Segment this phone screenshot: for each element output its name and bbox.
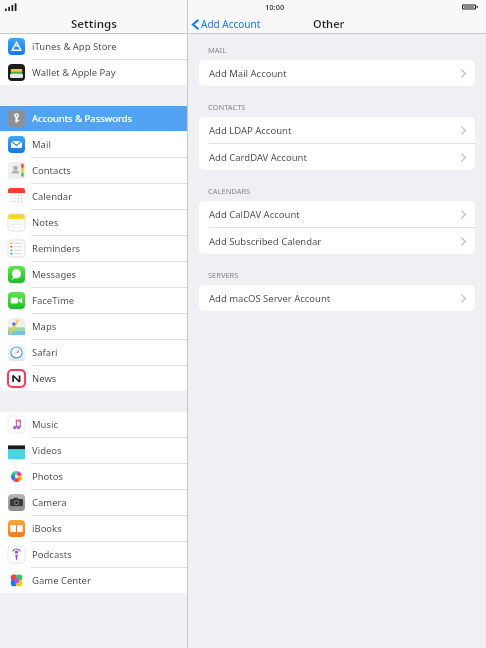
button[interactable]: FaceTime: [0, 288, 187, 313]
button[interactable]: Mail: [0, 132, 187, 157]
staticText: iTunes & App Store: [32, 40, 117, 53]
button[interactable]: Game Center: [0, 568, 187, 593]
button[interactable]: iBooks: [0, 516, 187, 541]
button[interactable]: Add CardDAV Account: [199, 144, 475, 170]
button[interactable]: News: [0, 366, 187, 391]
staticText: Photos: [32, 470, 64, 483]
staticText: FaceTime: [32, 294, 75, 307]
staticText: CONTACTS: [208, 102, 246, 112]
staticText: Settings: [71, 16, 117, 32]
staticText: Add Mail Account: [209, 67, 461, 80]
staticText: Mail: [32, 138, 51, 151]
button[interactable]: Reminders: [0, 236, 187, 261]
button[interactable]: Add Subscribed Calendar: [199, 228, 475, 254]
staticText: Add LDAP Account: [209, 124, 461, 137]
staticText: News: [32, 372, 57, 385]
button[interactable]: Music: [0, 412, 187, 437]
staticText: Music: [32, 418, 59, 431]
button[interactable]: Notes: [0, 210, 187, 235]
staticText: Add Account: [201, 17, 261, 31]
staticText: Wallet & Apple Pay: [32, 66, 116, 79]
button[interactable]: Safari: [0, 340, 187, 365]
staticText: Accounts & Passwords: [32, 112, 133, 125]
staticText: 10:00: [265, 2, 285, 12]
button[interactable]: Camera: [0, 490, 187, 515]
button[interactable]: Calendar: [0, 184, 187, 209]
button[interactable]: iTunes & App Store: [0, 34, 187, 59]
staticText: SERVERS: [208, 270, 239, 280]
staticText: Add CardDAV Account: [209, 151, 461, 164]
button[interactable]: Wallet & Apple Pay: [0, 60, 187, 85]
staticText: Safari: [32, 346, 58, 359]
staticText: Add CalDAV Account: [209, 208, 461, 221]
staticText: Game Center: [32, 574, 91, 587]
button[interactable]: Maps: [0, 314, 187, 339]
button[interactable]: Podcasts: [0, 542, 187, 567]
staticText: Notes: [32, 216, 59, 229]
staticText: iBooks: [32, 522, 62, 535]
button[interactable]: Accounts & Passwords: [0, 106, 187, 131]
staticText: MAIL: [208, 45, 227, 55]
staticText: Podcasts: [32, 548, 72, 561]
staticText: Contacts: [32, 164, 71, 177]
staticText: Add macOS Server Account: [209, 292, 461, 305]
staticText: Maps: [32, 320, 57, 333]
button[interactable]: Add Mail Account: [199, 60, 475, 86]
button[interactable]: Messages: [0, 262, 187, 287]
staticText: Calendar: [32, 190, 73, 203]
staticText: Videos: [32, 444, 62, 457]
button[interactable]: Videos: [0, 438, 187, 463]
button[interactable]: Photos: [0, 464, 187, 489]
staticText: Reminders: [32, 242, 81, 255]
staticText: Messages: [32, 268, 77, 281]
button[interactable]: Contacts: [0, 158, 187, 183]
staticText: Other: [313, 16, 345, 31]
staticText: Camera: [32, 496, 67, 509]
button[interactable]: Add macOS Server Account: [199, 285, 475, 311]
button[interactable]: Add Account: [192, 17, 261, 31]
button[interactable]: Add CalDAV Account: [199, 201, 475, 227]
staticText: Add Subscribed Calendar: [209, 235, 461, 248]
button[interactable]: Add LDAP Account: [199, 117, 475, 143]
staticText: CALENDARS: [208, 186, 251, 196]
